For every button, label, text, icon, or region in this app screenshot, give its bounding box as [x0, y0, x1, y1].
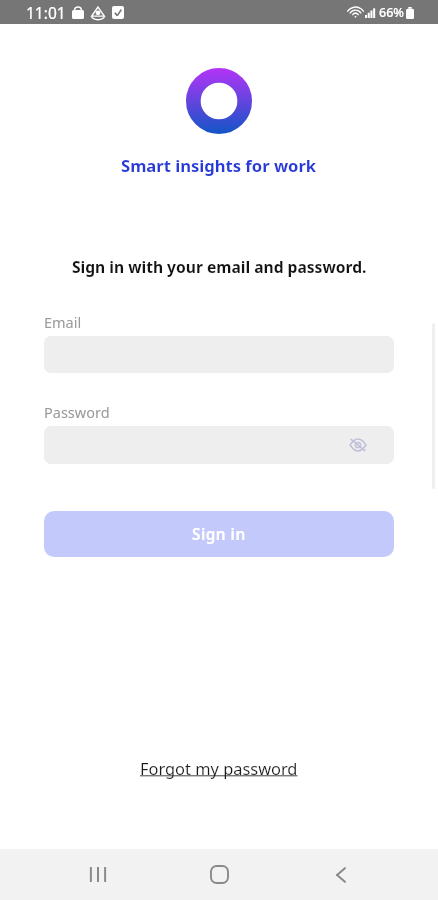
button[interactable]: Back: [280, 849, 401, 900]
button[interactable]: Home: [159, 849, 280, 900]
staticText: Sign in with your email and password.: [72, 256, 367, 277]
button[interactable]: Forgot my password: [136, 755, 302, 781]
button[interactable]: Sign in: [44, 511, 394, 557]
staticText: Sign in: [192, 524, 246, 545]
button[interactable]: Show password: [44, 426, 394, 464]
staticText: Forgot my password: [140, 757, 298, 779]
button[interactable]: Smart insights for work: [121, 154, 317, 177]
staticText: Password: [44, 402, 110, 422]
staticText: 66%: [379, 4, 404, 21]
staticText: Email: [44, 312, 82, 332]
button[interactable]: Recent apps: [37, 849, 159, 900]
staticText: 11:01: [26, 2, 66, 23]
button[interactable]: Show password: [348, 435, 368, 455]
